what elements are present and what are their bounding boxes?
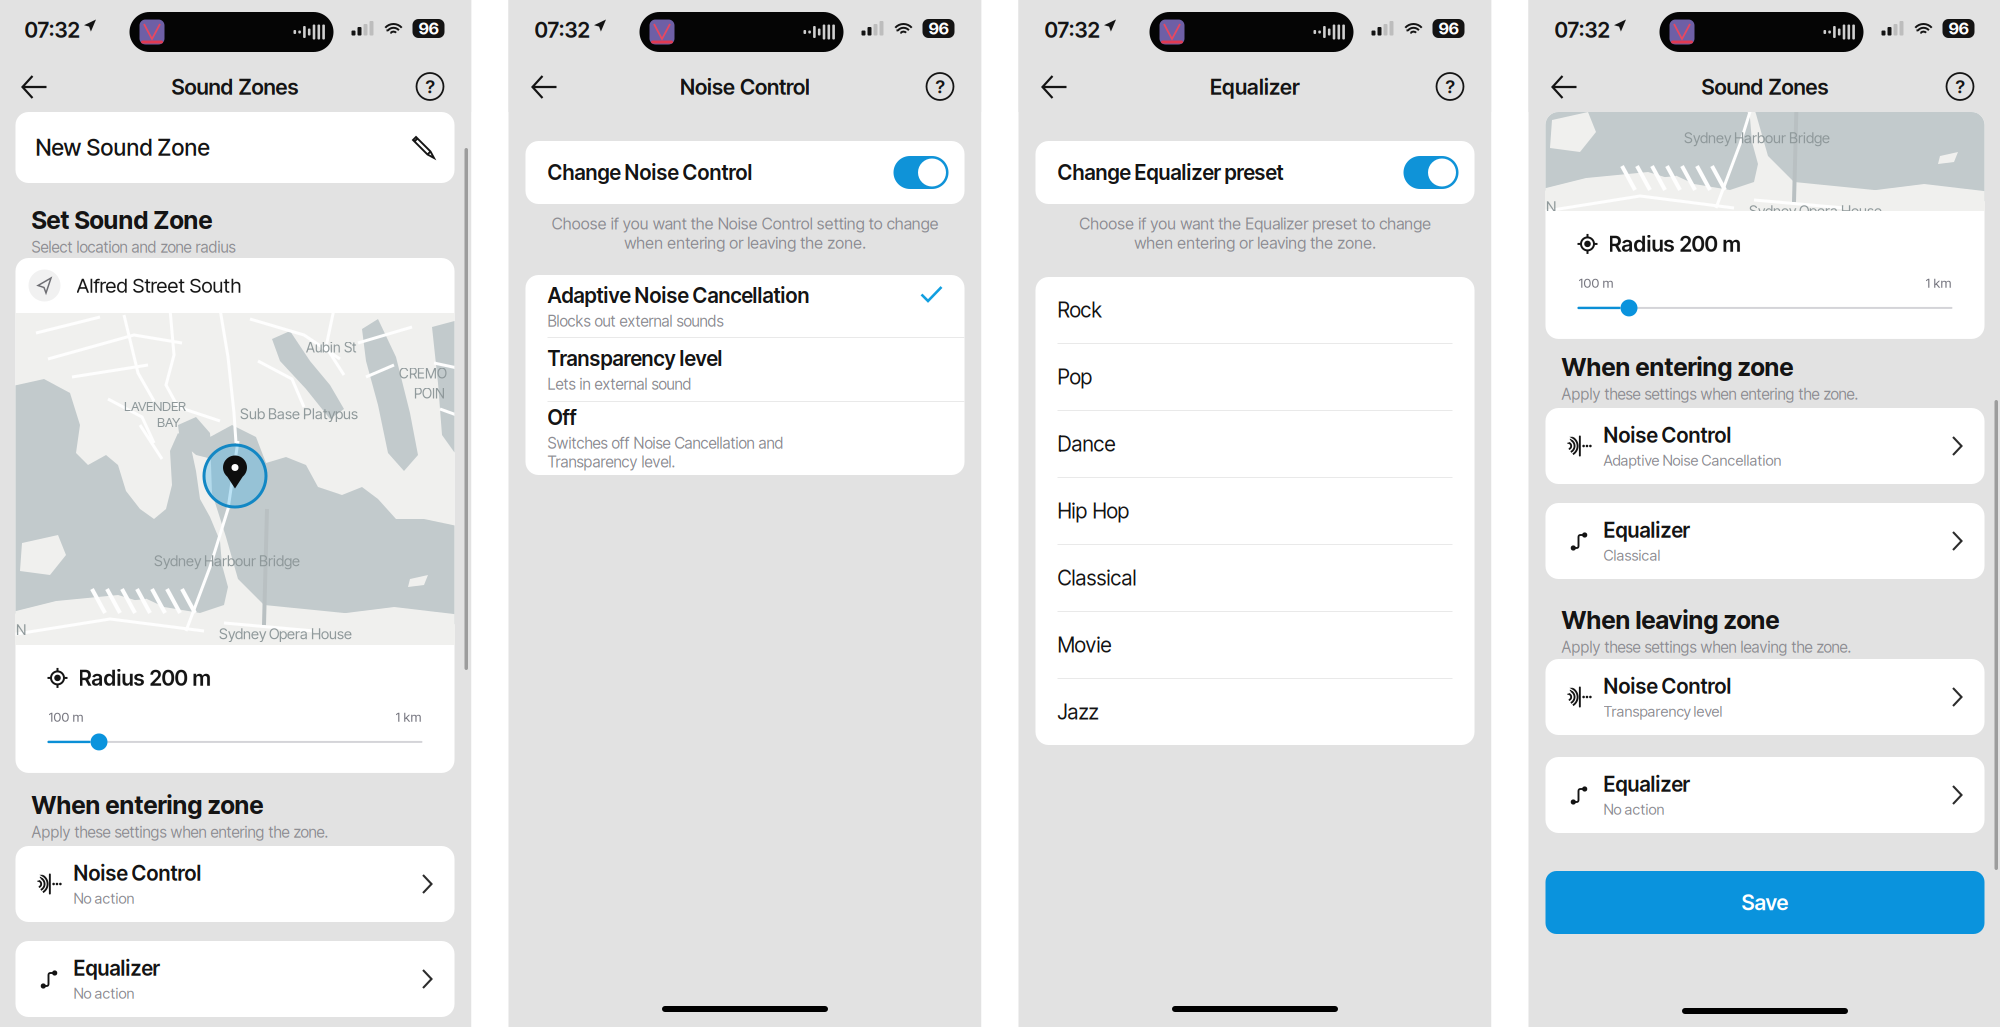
staticText: Noise Control [73,861,201,886]
staticText: 07:32 [24,17,79,43]
staticText: Apply these settings when leaving the zo… [1561,638,1851,656]
staticText: 07:32 [534,17,589,43]
staticText: No action [1603,801,1664,818]
button[interactable]: Hip Hop [1035,478,1474,544]
staticText: 100 m [1578,275,1613,291]
button[interactable]: Movie [1035,612,1474,678]
button[interactable]: Change Noise Control [525,141,964,204]
staticText: Choose if you want the Noise Control set… [551,214,938,253]
staticText: Sydney Harbour Bridge [154,552,300,570]
button[interactable]: Jazz [1035,679,1474,745]
staticText: POIN [414,385,445,402]
button[interactable]: Transparency level [525,338,964,401]
button[interactable]: Noise Control [1545,659,1984,735]
button[interactable]: Back [530,74,560,100]
staticText: Aubin St [306,339,356,356]
staticText: Noise Control [1603,674,1731,699]
staticText: Choose if you want the Equalizer preset … [1079,214,1431,253]
staticText: Classical [1057,565,1136,590]
staticText: Change Equalizer preset [1057,160,1283,185]
button[interactable]: Equalizer [1545,503,1984,579]
staticText: Radius 200 m [1608,231,1740,257]
staticText: Change Noise Control [547,160,752,185]
staticText: BAY [157,414,180,430]
staticText: Dance [1057,431,1115,456]
staticText: 100 m [48,709,83,725]
staticText: Jazz [1057,699,1098,724]
button[interactable]: Noise Control [15,846,454,922]
staticText: Equalizer [1603,772,1689,797]
staticText: 96 [1948,18,1968,39]
staticText: 1 km [395,709,421,725]
staticText: When leaving zone [1561,605,1779,635]
staticText: N [16,621,26,639]
staticText: 96 [1438,18,1458,39]
staticText: New Sound Zone [35,134,209,161]
button[interactable]: Change Equalizer preset [1035,141,1474,204]
staticText: Adaptive Noise Cancellation [1603,452,1781,469]
button[interactable]: Rock [1035,277,1474,343]
button[interactable]: Classical [1035,545,1474,611]
staticText: CREMO [399,365,447,382]
staticText: Switches off Noise Cancellation and Tran… [547,434,783,471]
staticText: Blocks out external sounds [547,312,723,331]
staticText: Equalizer [1603,518,1689,543]
staticText: N [1546,198,1556,216]
button[interactable]: Equalizer [1545,757,1984,833]
staticText: Noise Control [1603,423,1731,448]
staticText: ? [1955,75,1964,98]
staticText: 1 km [1925,275,1951,291]
staticText: ? [1445,75,1454,98]
staticText: LAVENDER [124,398,186,414]
staticText: Transparency level [1603,703,1722,720]
staticText: Apply these settings when entering the z… [31,823,328,841]
staticText: No action [73,985,134,1002]
staticText: Rock [1057,297,1101,322]
button[interactable]: Noise Control [1545,408,1984,484]
staticText: Movie [1057,632,1111,657]
staticText: 07:32 [1044,17,1099,43]
staticText: No action [73,890,134,907]
staticText: Adaptive Noise Cancellation [547,283,809,308]
button[interactable]: Back [20,74,50,100]
staticText: Select location and zone radius [31,238,235,256]
staticText: Sound Zones [171,74,298,100]
staticText: Transparency level [547,346,722,371]
staticText: Sydney Opera House [1749,202,1882,220]
staticText: Sydney Harbour Bridge [1684,129,1830,147]
staticText: Sub Base Platypus [240,405,358,423]
staticText: Classical [1603,547,1660,564]
staticText: Sydney Opera House [219,625,352,643]
staticText: Equalizer [73,956,159,981]
staticText: Radius 200 m [78,665,210,691]
staticText: When entering zone [1561,352,1793,382]
staticText: Apply these settings when entering the z… [1561,385,1858,403]
staticText: Sound Zones [1701,74,1828,100]
staticText: ? [935,75,944,98]
staticText: Lets in external sound [547,375,691,394]
button[interactable]: Back [1550,74,1580,100]
staticText: Noise Control [680,74,810,100]
staticText: Off [547,405,576,430]
button[interactable]: Back [1040,74,1070,100]
button[interactable]: Pop [1035,344,1474,410]
staticText: Equalizer [1210,74,1300,100]
staticText: When entering zone [31,790,263,820]
button[interactable]: Help [1436,73,1463,100]
staticText: 96 [928,18,948,39]
staticText: ? [425,75,434,98]
button[interactable]: Help [1946,73,1973,100]
staticText: Save [1741,890,1788,915]
staticText: 07:32 [1554,17,1609,43]
button[interactable]: Help [926,73,953,100]
button[interactable]: Adaptive Noise Cancellation [525,275,964,337]
button[interactable]: Dance [1035,411,1474,477]
staticText: Set Sound Zone [31,205,212,235]
button[interactable]: Save [1545,871,1984,934]
button[interactable]: New Sound Zone [15,112,454,183]
button[interactable]: Equalizer [15,941,454,1017]
button[interactable]: Off [525,402,964,475]
button[interactable]: Help [416,73,443,100]
staticText: Hip Hop [1057,498,1129,523]
